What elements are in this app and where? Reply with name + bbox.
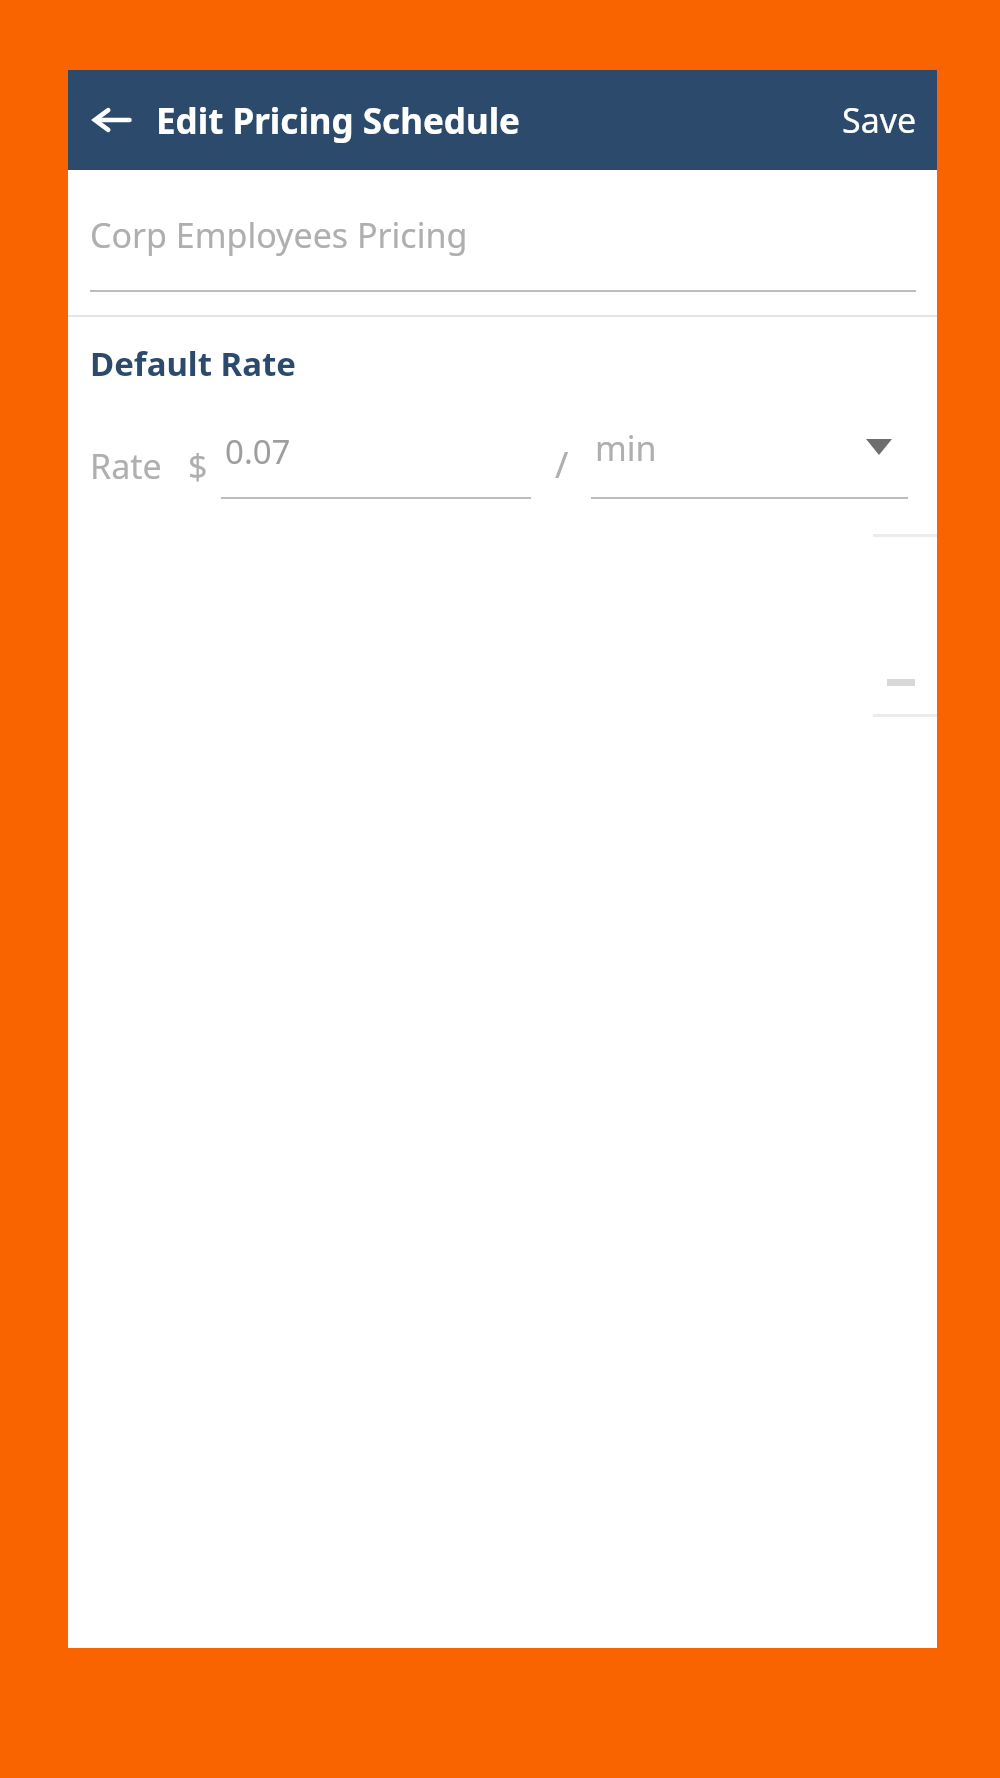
button[interactable]: min — [591, 429, 908, 499]
staticText: 0.07 — [225, 429, 291, 474]
staticText: Edit Pricing Schedule — [156, 97, 521, 145]
staticText: Save — [842, 97, 917, 143]
button[interactable]: Save — [822, 79, 937, 161]
button[interactable]: 0.07 — [211, 429, 531, 499]
staticText: / — [555, 440, 569, 489]
staticText: Default Rate — [90, 341, 297, 386]
button[interactable]: Corp Employees Pricing — [90, 170, 916, 292]
button[interactable]: Back — [74, 82, 150, 158]
staticText: Rate — [90, 443, 162, 489]
staticText: $ — [188, 443, 208, 489]
staticText: min — [595, 425, 657, 471]
staticText: Corp Employees Pricing — [90, 212, 468, 258]
